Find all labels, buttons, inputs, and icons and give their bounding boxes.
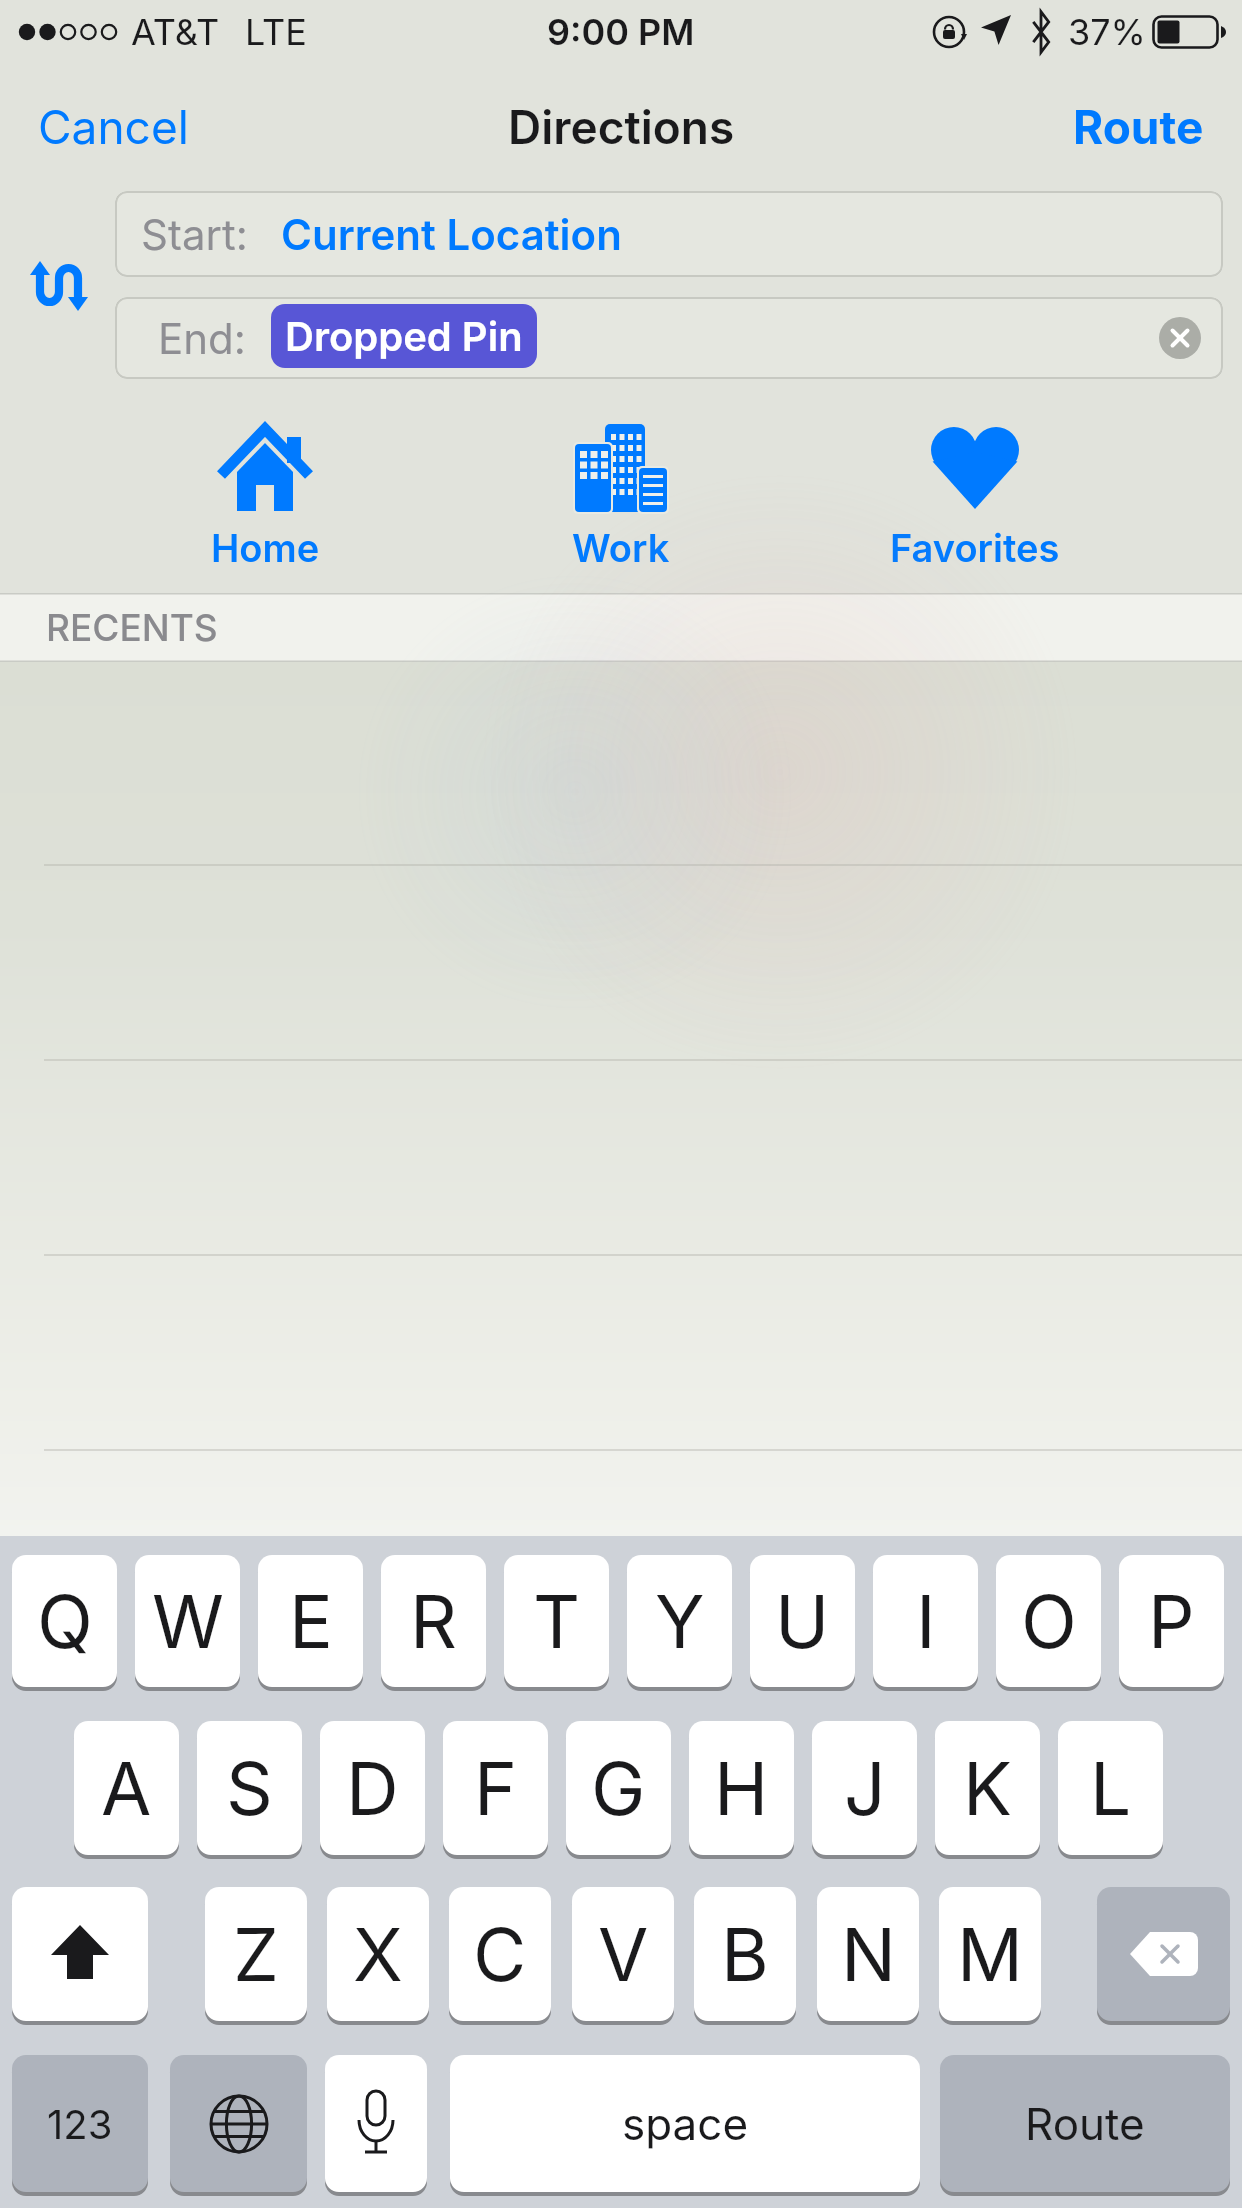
button[interactable] — [12, 1887, 148, 2025]
button[interactable]: space — [450, 2055, 920, 2196]
button[interactable]: G — [566, 1721, 671, 1859]
staticText: RECENTS — [46, 605, 218, 650]
button[interactable] — [325, 2055, 427, 2196]
button[interactable] — [28, 260, 86, 312]
button[interactable]: O — [996, 1555, 1101, 1691]
staticText: Favorites — [890, 525, 1060, 571]
staticText: Work — [572, 525, 670, 571]
button[interactable]: Route — [940, 2055, 1230, 2196]
staticText: S — [226, 1744, 273, 1832]
staticText: Current Location — [281, 209, 622, 260]
button[interactable]: C — [449, 1887, 551, 2025]
button[interactable]: Cancel — [38, 98, 238, 156]
staticText: Cancel — [38, 99, 189, 155]
button[interactable]: U — [750, 1555, 855, 1691]
staticText: AT&T — [131, 10, 220, 54]
staticText: F — [474, 1744, 518, 1832]
button[interactable] — [170, 2055, 307, 2196]
button[interactable]: X — [327, 1887, 429, 2025]
staticText: 9:00 PM — [547, 10, 695, 54]
button[interactable]: V — [572, 1887, 674, 2025]
button[interactable]: F — [443, 1721, 548, 1859]
staticText: Route — [1073, 99, 1204, 155]
button[interactable]: P — [1119, 1555, 1224, 1691]
button[interactable]: H — [689, 1721, 794, 1859]
button[interactable]: N — [817, 1887, 919, 2025]
staticText: O — [1021, 1577, 1077, 1665]
button[interactable]: T — [504, 1555, 609, 1691]
staticText: LTE — [245, 10, 307, 54]
staticText: A — [101, 1744, 152, 1832]
button[interactable] — [1159, 317, 1201, 359]
staticText: Dropped Pin — [285, 312, 523, 360]
button[interactable]: End: — [115, 297, 1223, 379]
button[interactable]: K — [935, 1721, 1040, 1859]
staticText: C — [473, 1910, 527, 1998]
staticText: I — [916, 1577, 936, 1665]
button[interactable]: R — [381, 1555, 486, 1691]
staticText: U — [775, 1577, 830, 1665]
staticText: 37% — [1068, 10, 1146, 54]
button[interactable]: Start: — [115, 191, 1223, 277]
button[interactable]: Favorites — [860, 415, 1090, 580]
staticText: End: — [158, 313, 246, 364]
button[interactable]: J — [812, 1721, 917, 1859]
staticText: L — [1090, 1744, 1132, 1832]
staticText: D — [346, 1744, 399, 1832]
staticText: G — [591, 1744, 646, 1832]
staticText: Y — [655, 1577, 705, 1665]
button[interactable]: A — [74, 1721, 179, 1859]
button[interactable] — [1097, 1887, 1230, 2025]
staticText: Q — [37, 1577, 93, 1665]
staticText: Z — [233, 1910, 279, 1998]
button[interactable]: Y — [627, 1555, 732, 1691]
button[interactable]: I — [873, 1555, 978, 1691]
button[interactable]: B — [694, 1887, 796, 2025]
button[interactable]: E — [258, 1555, 363, 1691]
staticText: R — [410, 1577, 457, 1665]
button[interactable]: Route — [1030, 98, 1204, 156]
staticText: P — [1148, 1577, 1195, 1665]
button[interactable]: D — [320, 1721, 425, 1859]
button[interactable]: W — [135, 1555, 240, 1691]
staticText: Route — [1025, 2097, 1145, 2150]
staticText: Start: — [141, 209, 248, 260]
staticText: B — [721, 1910, 769, 1998]
staticText: M — [957, 1910, 1023, 1998]
button[interactable]: Z — [205, 1887, 307, 2025]
button[interactable]: Q — [12, 1555, 117, 1691]
staticText: Directions — [508, 99, 735, 155]
staticText: J — [844, 1744, 886, 1832]
staticText: space — [622, 2097, 749, 2150]
staticText: H — [714, 1744, 769, 1832]
staticText: W — [152, 1577, 224, 1665]
button[interactable]: L — [1058, 1721, 1163, 1859]
button[interactable]: Home — [180, 415, 350, 580]
button[interactable]: M — [939, 1887, 1041, 2025]
staticText: E — [289, 1577, 333, 1665]
staticText: 123 — [47, 2100, 113, 2148]
staticText: T — [533, 1577, 581, 1665]
staticText: X — [353, 1910, 403, 1998]
staticText: Home — [211, 525, 320, 571]
button[interactable]: Work — [536, 415, 706, 580]
button[interactable]: 123 — [12, 2055, 148, 2196]
button[interactable]: S — [197, 1721, 302, 1859]
staticText: N — [841, 1910, 896, 1998]
staticText: K — [963, 1744, 1013, 1832]
staticText: V — [598, 1910, 649, 1998]
